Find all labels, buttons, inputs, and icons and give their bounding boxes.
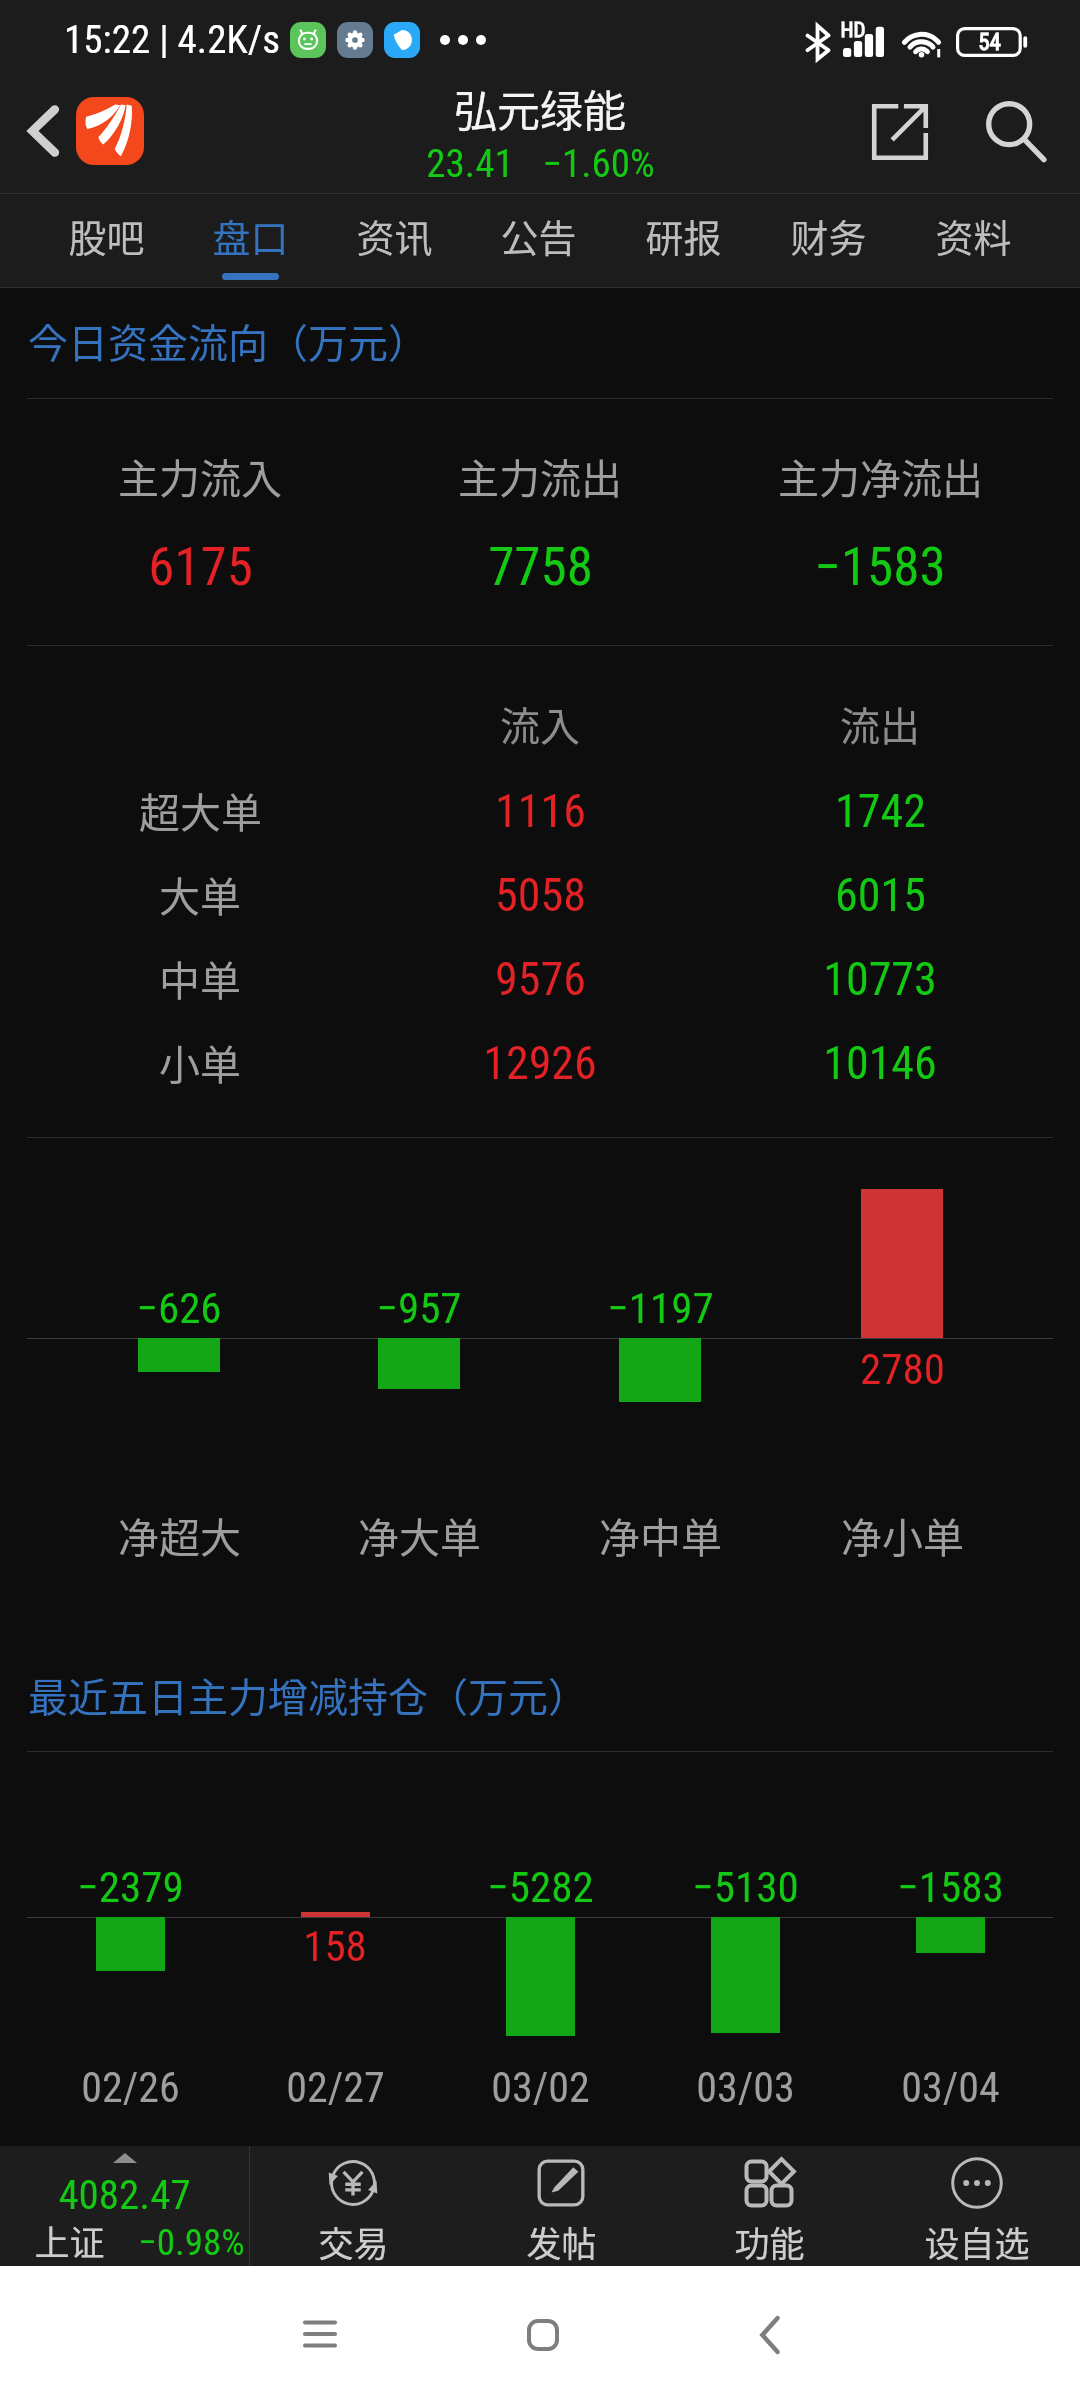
staticText: 净中单 xyxy=(599,1505,722,1564)
staticText: 发帖 xyxy=(526,2216,597,2267)
staticText: 功能 xyxy=(734,2216,805,2267)
staticText: 设自选 xyxy=(924,2216,1030,2267)
staticText: 6175 xyxy=(148,536,253,598)
staticText: 主力流入 xyxy=(118,446,282,505)
staticText: 资讯 xyxy=(356,208,433,263)
staticText: 23.41 xyxy=(426,141,514,187)
staticText: 主力净流出 xyxy=(778,446,983,505)
staticText: 10146 xyxy=(823,1036,937,1090)
staticText: 流入 xyxy=(500,695,580,753)
button[interactable]: 主屏幕 xyxy=(463,2266,623,2400)
button[interactable]: 资讯 xyxy=(322,193,466,288)
staticText: 2780 xyxy=(860,1344,945,1394)
staticText: −1.60% xyxy=(542,141,655,187)
staticText: 净小单 xyxy=(841,1505,964,1564)
staticText: 小单 xyxy=(159,1032,241,1091)
staticText: 10773 xyxy=(823,952,937,1006)
staticText: 03/04 xyxy=(901,2063,1000,2112)
staticText: 公告 xyxy=(500,208,577,263)
button[interactable]: 公告 xyxy=(466,193,611,288)
staticText: 上证 xyxy=(34,2215,105,2266)
staticText: 股吧 xyxy=(68,208,145,263)
button[interactable]: 研报 xyxy=(611,193,756,288)
button[interactable]: 搜索 xyxy=(955,80,1067,193)
button[interactable]: 交易 xyxy=(249,2146,457,2266)
staticText: 54 xyxy=(978,29,1001,56)
staticText: 15:22 | 4.2K/s xyxy=(64,17,280,63)
staticText: −1583 xyxy=(897,1862,1004,1912)
button[interactable]: 功能 xyxy=(665,2146,873,2266)
staticText: −1583 xyxy=(814,536,946,598)
staticText: 中单 xyxy=(159,948,241,1007)
staticText: 6015 xyxy=(835,868,926,922)
staticText: −957 xyxy=(376,1283,462,1333)
staticText: 4082.47 xyxy=(58,2171,191,2219)
staticText: −5282 xyxy=(487,1862,594,1912)
staticText: 弘元绿能 xyxy=(454,77,626,139)
button[interactable]: 财务 xyxy=(756,193,901,288)
staticText: 净超大 xyxy=(118,1505,241,1564)
staticText: 02/26 xyxy=(81,2063,180,2112)
button[interactable]: 盘口 xyxy=(178,193,322,288)
button[interactable]: 4082.47 xyxy=(0,2146,249,2266)
staticText: 主力流出 xyxy=(458,446,622,505)
staticText: 研报 xyxy=(645,208,722,263)
staticText: 03/02 xyxy=(491,2063,590,2112)
button[interactable]: 设自选 xyxy=(873,2146,1080,2266)
staticText: −5130 xyxy=(692,1862,799,1912)
staticText: 大单 xyxy=(159,864,241,923)
staticText: 净大单 xyxy=(358,1505,481,1564)
button[interactable]: 最近任务 xyxy=(240,2266,400,2400)
staticText: −2379 xyxy=(77,1862,184,1912)
button[interactable]: 分享 xyxy=(845,80,955,193)
staticText: 158 xyxy=(303,1921,367,1971)
staticText: 02/27 xyxy=(286,2063,385,2112)
button[interactable]: 资料 xyxy=(901,193,1046,288)
staticText: 交易 xyxy=(318,2216,389,2267)
staticText: 5058 xyxy=(495,868,586,922)
button[interactable]: 股吧 xyxy=(34,193,178,288)
staticText: 超大单 xyxy=(139,780,262,839)
staticText: 今日资金流向（万元） xyxy=(28,312,428,370)
staticText: HD xyxy=(840,18,866,43)
staticText: 资料 xyxy=(935,208,1012,263)
staticText: 盘口 xyxy=(212,208,289,263)
staticText: 12926 xyxy=(483,1036,597,1090)
staticText: 最近五日主力增减持仓（万元） xyxy=(28,1666,588,1724)
staticText: −0.98% xyxy=(138,2221,245,2264)
button[interactable]: 返回 xyxy=(690,2266,850,2400)
staticText: 9576 xyxy=(495,952,586,1006)
staticText: 财务 xyxy=(790,208,867,263)
button[interactable]: 返回 xyxy=(0,97,76,165)
staticText: −626 xyxy=(136,1283,222,1333)
staticText: 1742 xyxy=(835,784,926,838)
button[interactable]: 发帖 xyxy=(457,2146,665,2266)
staticText: 1116 xyxy=(495,784,586,838)
staticText: 流出 xyxy=(840,695,920,753)
staticText: −1197 xyxy=(607,1283,714,1333)
staticText: 7758 xyxy=(488,536,593,598)
button[interactable]: 东方财富 xyxy=(76,97,144,165)
staticText: 03/03 xyxy=(696,2063,795,2112)
